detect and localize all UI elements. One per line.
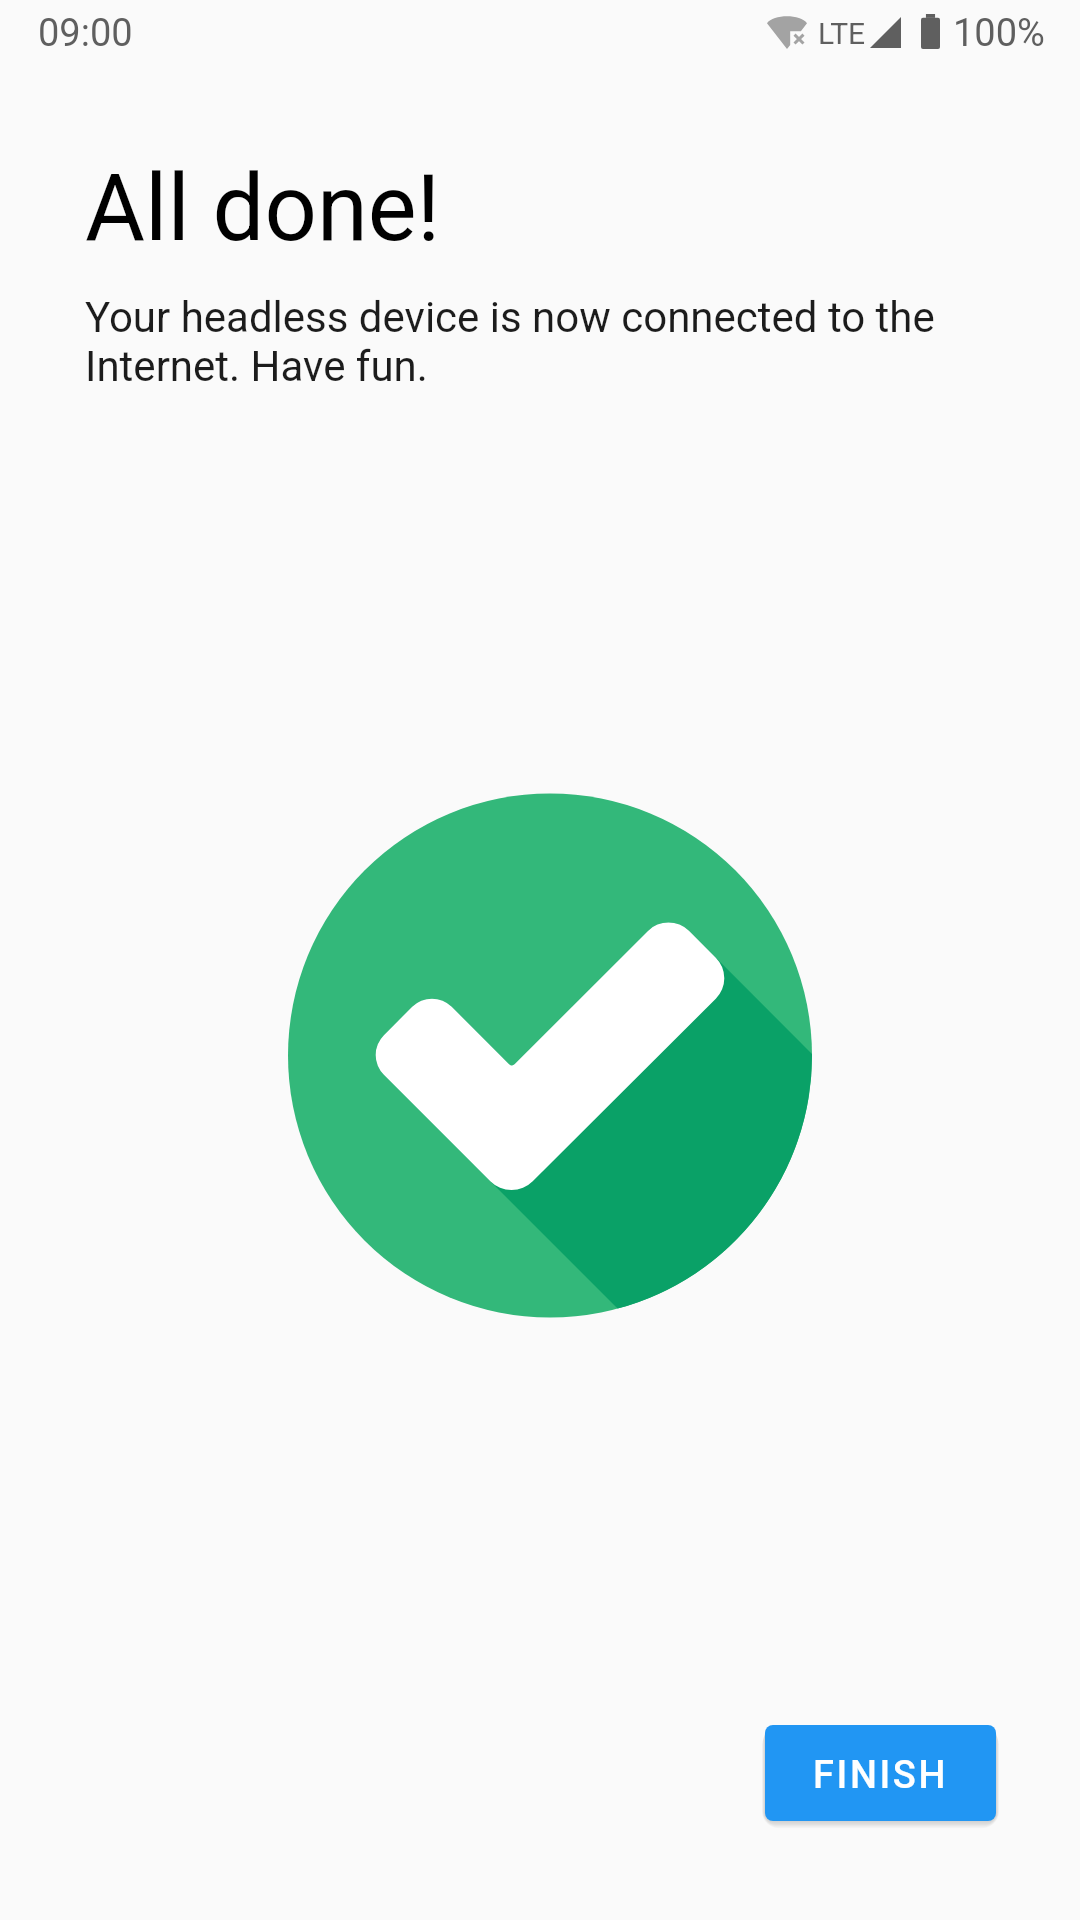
other: Wi-Fi disconnected bbox=[767, 16, 807, 49]
staticText: FINISH bbox=[813, 1753, 948, 1798]
button[interactable]: FINISH bbox=[765, 1725, 996, 1821]
other: Battery full bbox=[921, 14, 940, 49]
staticText: LTE bbox=[818, 16, 866, 51]
staticText: Your headless device is now connected to… bbox=[85, 293, 1020, 391]
staticText: All done! bbox=[85, 155, 441, 263]
staticText: 100% bbox=[953, 11, 1045, 56]
staticText: 09:00 bbox=[38, 11, 133, 56]
other: Mobile signal bbox=[870, 17, 901, 48]
other: Setup complete bbox=[0, 0, 1080, 1920]
